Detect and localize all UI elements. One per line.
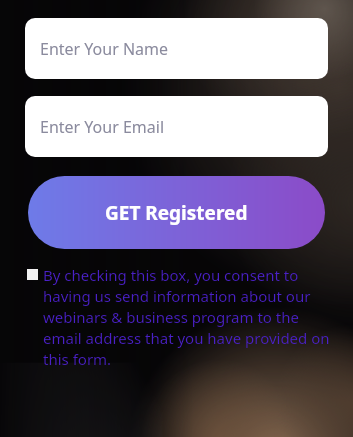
staticText: By checking this box, you consent to hav… bbox=[43, 265, 333, 370]
staticText: GET Registered bbox=[105, 200, 248, 226]
button[interactable]: Enter Your Email bbox=[25, 96, 328, 157]
staticText: Enter Your Name bbox=[40, 38, 169, 60]
staticText: Enter Your Email bbox=[40, 116, 165, 138]
button[interactable]: Enter Your Name bbox=[25, 18, 328, 79]
button[interactable]: GET Registered bbox=[28, 176, 325, 249]
button[interactable]: Consent checkbox bbox=[27, 265, 333, 370]
